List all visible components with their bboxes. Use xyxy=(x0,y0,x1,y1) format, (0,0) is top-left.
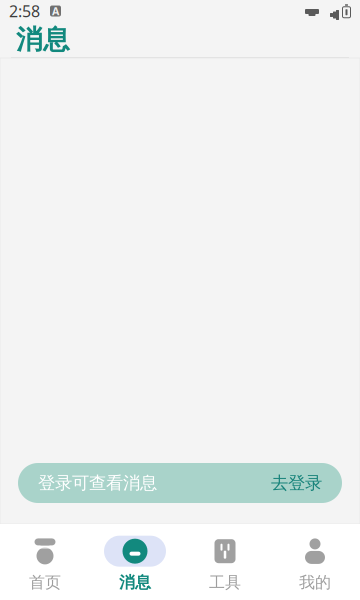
staticText: A xyxy=(52,4,59,18)
button[interactable]: 登录可查看消息 xyxy=(18,463,342,503)
staticText: 2:58 xyxy=(9,0,40,22)
staticText: 消息 xyxy=(16,23,70,56)
button[interactable]: 我的 xyxy=(270,524,360,600)
staticText: 消息 xyxy=(119,573,151,592)
staticText: 我的 xyxy=(299,573,331,592)
button[interactable]: 消息 xyxy=(90,524,180,600)
staticText: 去登录 xyxy=(271,472,322,494)
button[interactable]: 工具 xyxy=(180,524,270,600)
staticText: 登录可查看消息 xyxy=(38,472,157,494)
button[interactable]: 首页 xyxy=(0,524,90,600)
staticText: 首页 xyxy=(29,573,61,592)
staticText: 工具 xyxy=(209,573,241,592)
